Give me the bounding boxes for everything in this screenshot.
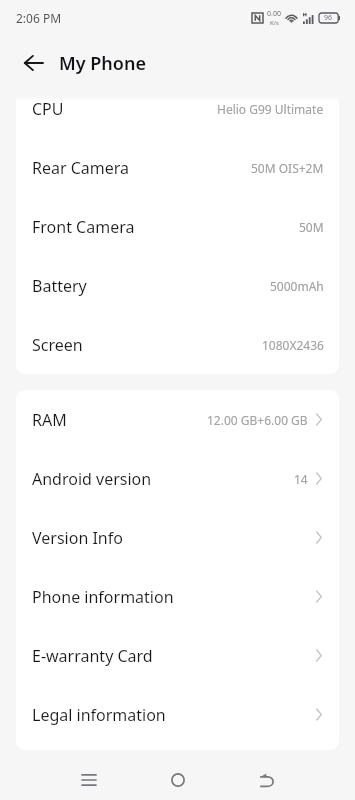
staticText: Android version <box>32 468 152 490</box>
staticText: RAM <box>32 409 67 431</box>
button[interactable]: Back <box>13 43 53 83</box>
staticText: 5000mAh <box>270 278 324 294</box>
staticText: Version Info <box>32 527 123 549</box>
button[interactable]: Front Camera <box>16 197 339 256</box>
staticText: 50M OIS+2M <box>251 160 324 176</box>
staticText: 0.00 <box>267 9 281 19</box>
button[interactable]: Phone information <box>16 567 339 626</box>
button[interactable]: E-warranty Card <box>16 626 339 685</box>
staticText: 1080X2436 <box>262 337 324 353</box>
button[interactable]: Rear Camera <box>16 138 339 197</box>
button[interactable]: Legal information <box>16 685 339 744</box>
staticText: 14 <box>294 471 308 487</box>
staticText: Front Camera <box>32 216 135 238</box>
button[interactable]: Screen <box>16 315 339 374</box>
staticText: My Phone <box>59 51 146 76</box>
button[interactable]: Battery <box>16 256 339 315</box>
staticText: E-warranty Card <box>32 645 153 667</box>
staticText: Screen <box>32 334 83 356</box>
staticText: 50M <box>299 219 324 235</box>
staticText: Phone information <box>32 586 174 608</box>
staticText: 12.00 GB+6.00 GB <box>207 412 308 428</box>
staticText: Helio G99 Ultimate <box>217 101 324 117</box>
staticText: Legal information <box>32 704 166 726</box>
staticText: 96 <box>324 13 333 23</box>
staticText: Battery <box>32 275 87 297</box>
button[interactable]: Version Info <box>16 508 339 567</box>
button[interactable]: RAM <box>16 390 339 449</box>
staticText: Rear Camera <box>32 157 130 179</box>
button[interactable]: Android version <box>16 449 339 508</box>
staticText: K/s <box>270 19 279 27</box>
staticText: 2:06 PM <box>16 10 62 26</box>
button[interactable]: Back <box>222 758 310 800</box>
button[interactable]: Recent apps <box>44 758 134 800</box>
staticText: CPU <box>32 98 64 120</box>
button[interactable]: Home <box>134 758 222 800</box>
button[interactable]: CPU <box>16 96 339 138</box>
